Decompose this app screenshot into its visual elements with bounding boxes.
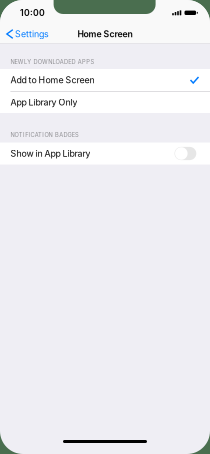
staticText: Settings xyxy=(15,29,49,39)
staticText: NOTIFICATION BADGES xyxy=(10,132,79,138)
staticText: 10:00 xyxy=(20,8,45,18)
staticText: Add to Home Screen xyxy=(10,75,94,85)
button[interactable]: App Library Only xyxy=(0,92,210,113)
button[interactable]: Add to Home Screen xyxy=(0,69,210,91)
staticText: App Library Only xyxy=(10,97,77,108)
button[interactable]: Settings xyxy=(0,26,53,42)
staticText: NEWLY DOWNLOADED APPS xyxy=(10,59,94,65)
staticText: Home Screen xyxy=(77,29,132,39)
staticText: Show in App Library xyxy=(10,148,90,159)
